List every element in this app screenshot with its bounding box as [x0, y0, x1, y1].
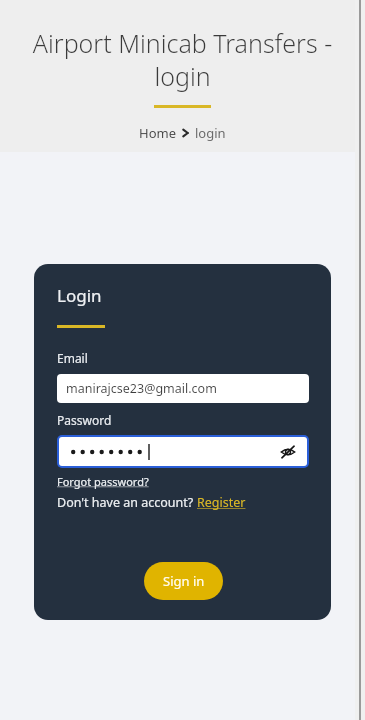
staticText: manirajcse23@gmail.com — [66, 380, 217, 397]
button[interactable]: Home — [139, 124, 176, 142]
staticText: Sign in — [163, 572, 205, 590]
button[interactable]: Sign in — [144, 562, 223, 600]
button[interactable]: Hide password — [59, 437, 307, 466]
staticText: Login — [57, 284, 102, 307]
button[interactable]: Register — [197, 494, 246, 511]
staticText: Don't have an account? — [57, 494, 197, 511]
staticText: Register — [197, 494, 246, 511]
staticText: Password — [57, 412, 112, 428]
staticText: login — [195, 124, 226, 142]
button[interactable]: Forgot password? — [57, 474, 149, 489]
staticText: Email — [57, 350, 88, 366]
button[interactable]: manirajcse23@gmail.com — [57, 374, 309, 403]
staticText: Airport Minicab Transfers - login — [14, 26, 351, 93]
staticText: Home — [139, 124, 176, 142]
staticText: Forgot password? — [57, 474, 149, 489]
button[interactable]: Hide password — [277, 441, 299, 463]
